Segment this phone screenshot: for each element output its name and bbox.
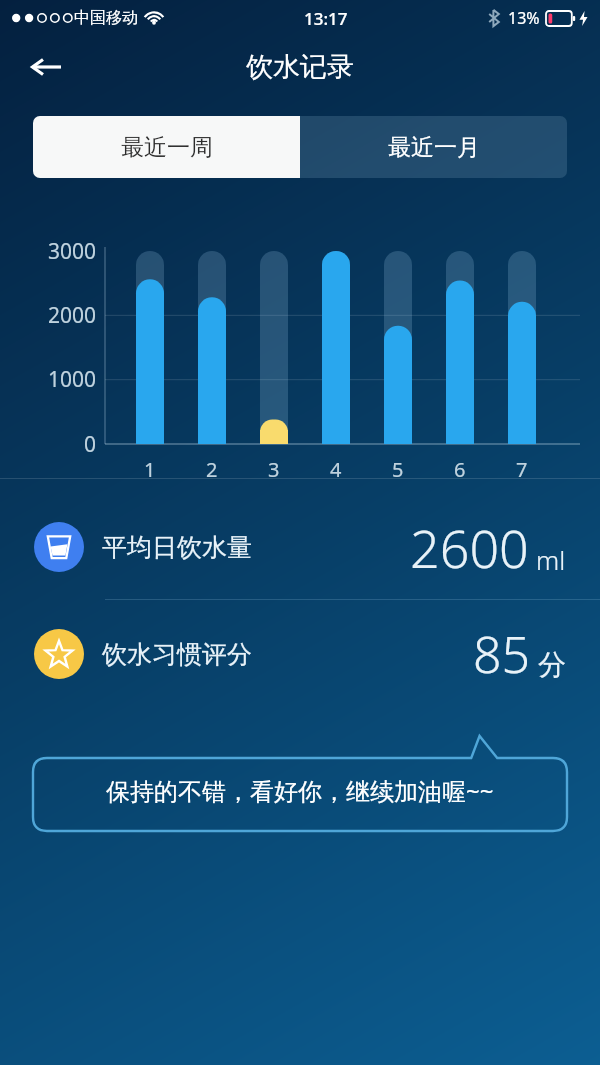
staticText: 饮水习惯评分 <box>102 639 252 670</box>
staticText: 饮水记录 <box>246 50 354 84</box>
staticText: ml <box>536 542 566 577</box>
staticText: 2 <box>206 456 218 483</box>
staticText: 3 <box>268 456 280 483</box>
staticText: 中国移动 <box>74 8 138 28</box>
button[interactable]: 饮水习惯评分 <box>0 612 600 696</box>
button[interactable]: 平均日饮水量 <box>0 505 600 589</box>
button[interactable]: 最近一周 <box>33 116 300 178</box>
staticText: 最近一周 <box>121 133 213 162</box>
staticText: 13:17 <box>304 7 348 30</box>
staticText: 2000 <box>47 301 96 330</box>
staticText: 4 <box>330 456 342 483</box>
staticText: 平均日饮水量 <box>102 532 252 563</box>
staticText: 1000 <box>47 365 96 394</box>
staticText: 2600 <box>410 512 529 583</box>
staticText: 0 <box>83 430 96 459</box>
staticText: 3000 <box>47 237 96 266</box>
staticText: 6 <box>454 456 466 483</box>
staticText: 13% <box>508 7 540 29</box>
staticText: 分 <box>538 647 566 682</box>
button[interactable]: 最近一月 <box>300 116 567 178</box>
staticText: 85 <box>473 620 531 688</box>
staticText: 7 <box>516 456 528 483</box>
button[interactable]: 保持的不错，看好你，继续加油喔~~ <box>33 736 567 831</box>
staticText: 5 <box>392 456 404 483</box>
button[interactable]: Back <box>18 39 74 95</box>
staticText: 保持的不错，看好你，继续加油喔~~ <box>106 774 494 807</box>
staticText: 最近一月 <box>388 133 480 162</box>
staticText: 1 <box>144 456 156 483</box>
